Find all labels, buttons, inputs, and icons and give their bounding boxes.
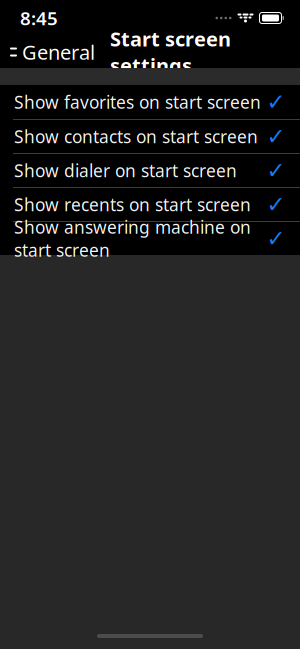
staticText: Show dialer on start screen xyxy=(14,159,237,182)
staticText: Show favorites on start screen xyxy=(14,90,261,113)
staticText: ✓ xyxy=(266,192,285,217)
staticText: ✓ xyxy=(266,124,285,149)
staticText: Show contacts on start screen xyxy=(14,125,258,148)
staticText: General xyxy=(22,39,95,65)
staticText: 8:45 xyxy=(20,6,58,30)
staticText: Show answering machine on start screen xyxy=(14,215,251,261)
staticText: Start screen settings xyxy=(110,25,231,78)
button[interactable]: Show recents on start screen xyxy=(0,187,300,221)
staticText: Show recents on start screen xyxy=(14,193,251,216)
button[interactable]: Show dialer on start screen xyxy=(0,153,300,187)
button[interactable]: Show favorites on start screen xyxy=(0,85,300,119)
staticText: ✓ xyxy=(266,158,285,183)
staticText: ✓ xyxy=(266,226,285,251)
button[interactable]: General xyxy=(0,34,101,70)
button[interactable]: Show contacts on start screen xyxy=(0,119,300,153)
staticText: ✓ xyxy=(266,89,285,115)
button[interactable]: Show answering machine on start screen xyxy=(0,221,300,255)
